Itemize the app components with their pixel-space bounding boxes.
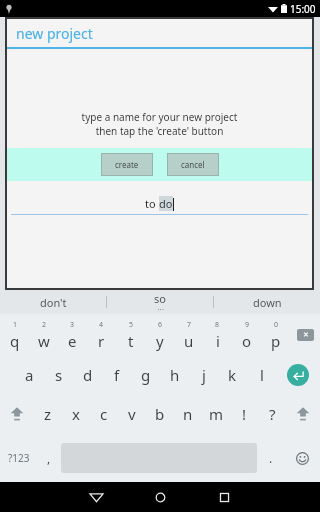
staticText: t <box>128 331 134 351</box>
staticText: p <box>271 331 281 351</box>
staticText: g <box>141 365 151 385</box>
button[interactable]: 3 <box>58 314 87 356</box>
staticText: a <box>25 365 34 385</box>
staticText: down <box>253 295 282 310</box>
staticText: new project <box>16 24 93 43</box>
staticText: y <box>156 331 164 351</box>
staticText: s <box>55 365 63 385</box>
button[interactable]: f <box>102 356 131 394</box>
button[interactable]: don't <box>0 290 106 314</box>
button[interactable]: n <box>174 394 202 434</box>
staticText: , <box>47 450 51 466</box>
button[interactable]: 4 <box>87 314 116 356</box>
staticText: b <box>155 404 165 424</box>
button[interactable]: 0 <box>261 314 290 356</box>
staticText: ✕ <box>303 331 309 339</box>
button[interactable]: ?123 <box>0 434 37 482</box>
staticText: q <box>10 331 20 351</box>
button[interactable]: l <box>247 356 276 394</box>
button[interactable]: x <box>62 394 90 434</box>
staticText: v <box>128 404 136 424</box>
button[interactable]: Emoji <box>284 434 320 482</box>
button[interactable]: c <box>90 394 118 434</box>
staticText: i <box>216 331 220 351</box>
staticText: j <box>202 365 206 385</box>
button[interactable]: Backspace <box>290 314 320 356</box>
staticText: don't <box>40 295 67 310</box>
staticText: o <box>242 331 252 351</box>
button[interactable]: Home <box>128 482 192 512</box>
staticText: cancel <box>181 159 205 170</box>
button[interactable]: b <box>146 394 174 434</box>
button[interactable]: g <box>131 356 160 394</box>
staticText: m <box>209 404 224 424</box>
button[interactable]: a <box>15 356 44 394</box>
button[interactable]: m <box>202 394 230 434</box>
staticText: k <box>228 365 237 385</box>
staticText: n <box>183 404 193 424</box>
staticText: type a name for your new project then ta… <box>7 110 312 138</box>
button[interactable]: s <box>44 356 73 394</box>
button[interactable]: j <box>189 356 218 394</box>
button[interactable]: k <box>218 356 247 394</box>
button[interactable]: Shift <box>286 394 320 434</box>
button[interactable]: Shift <box>0 394 34 434</box>
staticText: create <box>115 159 139 170</box>
staticText: ? <box>269 404 276 424</box>
button[interactable]: h <box>160 356 189 394</box>
button[interactable]: , <box>37 434 61 482</box>
button[interactable]: 1 <box>0 314 29 356</box>
staticText: 9 <box>245 320 250 330</box>
staticText: 15:00 <box>290 2 316 16</box>
button[interactable]: 8 <box>203 314 232 356</box>
staticText: 4 <box>99 320 104 330</box>
staticText: 3 <box>70 320 75 330</box>
staticText: d <box>83 365 93 385</box>
staticText: l <box>260 365 264 385</box>
staticText: ! <box>242 404 247 424</box>
staticText: r <box>98 331 105 351</box>
staticText: h <box>170 365 180 385</box>
button[interactable]: v <box>118 394 146 434</box>
button[interactable]: cancel <box>167 153 219 176</box>
button[interactable]: Recents <box>192 482 256 512</box>
staticText: c <box>100 404 108 424</box>
staticText: z <box>44 404 52 424</box>
button[interactable]: d <box>73 356 102 394</box>
staticText: 0 <box>274 320 279 330</box>
staticText: 8 <box>215 320 220 330</box>
staticText: ⋯ <box>157 306 164 314</box>
button[interactable]: z <box>34 394 62 434</box>
button[interactable]: 9 <box>232 314 261 356</box>
staticText: u <box>184 331 194 351</box>
button[interactable]: 6 <box>145 314 174 356</box>
staticText: e <box>68 331 77 351</box>
button[interactable]: Back <box>64 482 128 512</box>
staticText: w <box>38 331 50 351</box>
staticText: so <box>154 291 166 306</box>
staticText: 5 <box>129 320 134 330</box>
staticText: do <box>159 196 173 211</box>
button[interactable]: ! <box>230 394 258 434</box>
staticText: 6 <box>158 320 163 330</box>
button[interactable]: 7 <box>174 314 203 356</box>
staticText: . <box>269 450 273 466</box>
button[interactable]: . <box>257 434 284 482</box>
button[interactable]: Enter <box>276 356 320 394</box>
staticText: ?123 <box>8 451 30 465</box>
staticText: 7 <box>187 320 192 330</box>
button[interactable]: 5 <box>116 314 145 356</box>
staticText: x <box>72 404 80 424</box>
button[interactable]: create <box>101 153 153 176</box>
staticText: 1 <box>13 320 18 330</box>
button[interactable]: 2 <box>29 314 58 356</box>
button[interactable]: down <box>214 290 320 314</box>
staticText: 2 <box>42 320 47 330</box>
staticText: f <box>114 365 120 385</box>
staticText: to <box>145 196 159 211</box>
button[interactable]: ? <box>258 394 286 434</box>
